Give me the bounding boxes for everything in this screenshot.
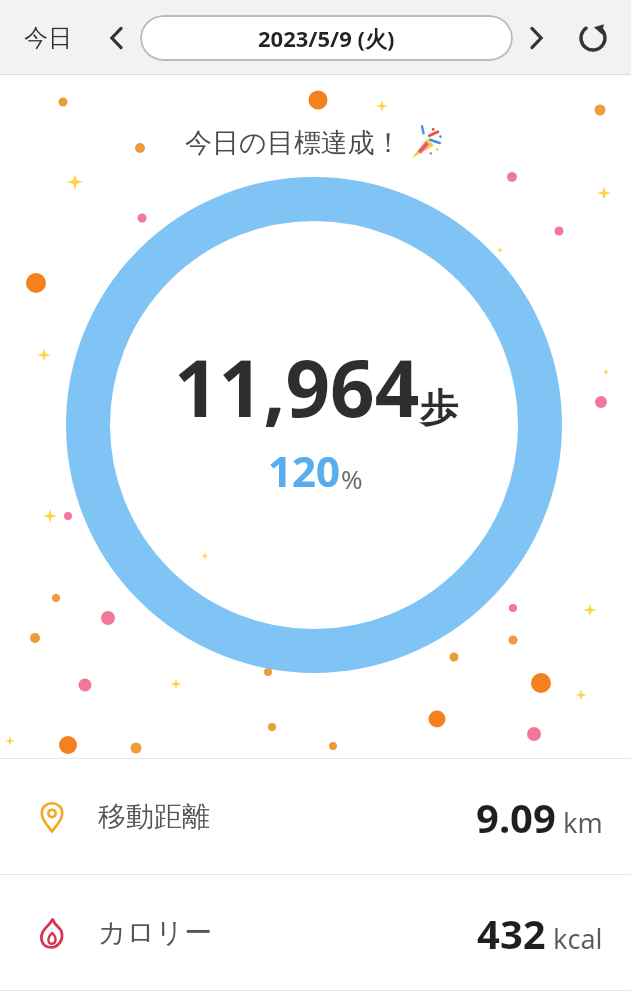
staticText: 移動距離 [98, 799, 210, 834]
staticText: kcal [553, 920, 603, 957]
button[interactable]: Refresh [573, 18, 613, 58]
staticText: km [563, 804, 603, 841]
staticText: 11,964 [174, 334, 420, 440]
button[interactable]: 2023/5/9 (火) [140, 15, 513, 61]
staticText: 今日の目標達成！ [185, 126, 402, 160]
button[interactable]: カロリー [0, 875, 631, 990]
button[interactable]: 今日 [18, 17, 78, 59]
staticText: 9.09 [476, 790, 556, 844]
staticText: カロリー [98, 915, 212, 950]
button[interactable]: Previous day [100, 21, 134, 55]
staticText: 2023/5/9 (火) [258, 23, 395, 53]
staticText: % [341, 461, 363, 496]
staticText: 歩 [420, 384, 458, 432]
staticText: 今日 [24, 23, 72, 53]
staticText: 432 [477, 906, 546, 960]
button[interactable]: Next day [519, 21, 553, 55]
button[interactable]: 移動距離 [0, 759, 631, 874]
staticText: 120 [268, 442, 341, 499]
